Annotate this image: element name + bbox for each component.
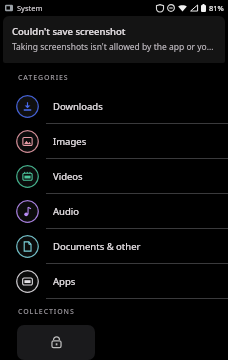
button[interactable]: Documents & other [0,229,228,263]
staticText: Apps [53,275,76,288]
staticText: Videos [53,170,83,183]
staticText: COLLECTIONS [18,307,75,317]
button[interactable]: Videos [0,159,228,193]
button[interactable]: Apps [0,264,228,298]
staticText: Downloads [53,100,103,113]
staticText: CATEGORIES [18,73,69,83]
staticText: Couldn't save screenshot [12,25,126,38]
button[interactable]: Images [0,124,228,158]
staticText: Images [53,135,87,148]
staticText: Audio [53,205,79,218]
staticText: Documents & other [53,240,141,253]
staticText: 81% [209,3,224,13]
staticText: System [17,3,43,13]
button[interactable]: Couldn't save screenshot [3,16,225,63]
button[interactable]: Audio [0,194,228,228]
button[interactable]: Downloads [0,89,228,123]
button[interactable]: Locked collection [17,325,95,360]
staticText: Taking screenshots isn't allowed by the … [12,41,216,53]
